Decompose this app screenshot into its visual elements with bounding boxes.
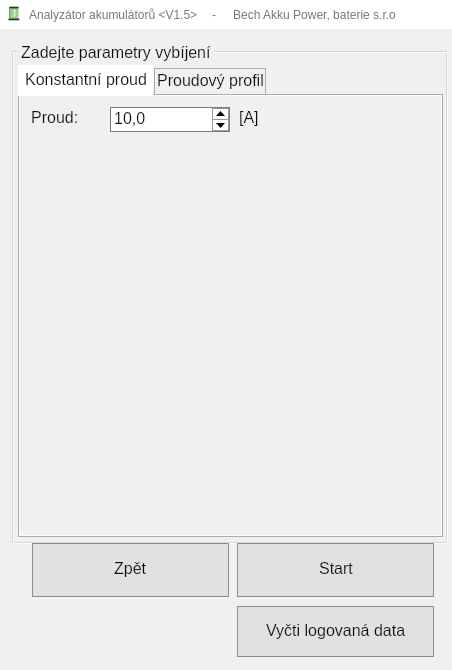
staticText: Proud: bbox=[31, 109, 79, 127]
button[interactable]: Start bbox=[237, 543, 434, 597]
staticText: Vyčti logovaná data bbox=[266, 622, 406, 640]
button[interactable]: Konstantní proud bbox=[18, 65, 153, 96]
button[interactable]: Increase bbox=[212, 108, 229, 119]
staticText: Start bbox=[319, 560, 353, 578]
staticText: Konstantní proud bbox=[25, 71, 147, 89]
staticText: - bbox=[212, 8, 216, 21]
staticText: 10,0 bbox=[114, 110, 146, 128]
button[interactable]: Vyčti logovaná data bbox=[237, 606, 434, 657]
staticText: Bech Akku Power, baterie s.r.o bbox=[233, 8, 396, 21]
staticText: Zpět bbox=[114, 560, 147, 578]
staticText: Zadejte parametry vybíjení bbox=[21, 44, 211, 62]
staticText: Proudový profil bbox=[157, 72, 264, 90]
button[interactable]: Proudový profil bbox=[154, 68, 266, 95]
staticText: [A] bbox=[239, 109, 259, 127]
staticText: Analyzátor akumulátorů <V1.5> bbox=[29, 8, 198, 21]
button[interactable]: Decrease bbox=[212, 120, 229, 131]
other: App icon bbox=[7, 5, 21, 22]
button[interactable]: Zpět bbox=[32, 543, 229, 597]
